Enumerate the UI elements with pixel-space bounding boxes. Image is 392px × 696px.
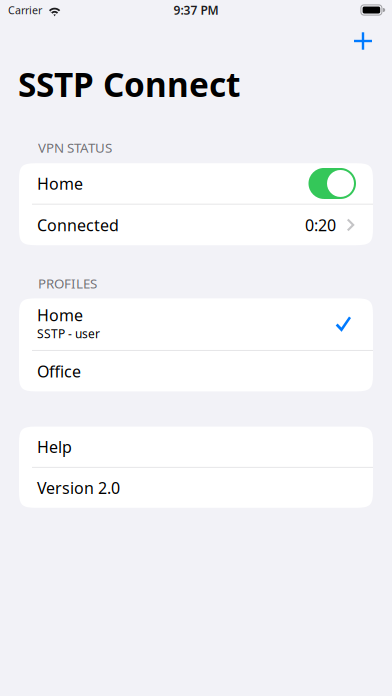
staticText: PROFILES xyxy=(38,274,97,292)
staticText: VPN STATUS xyxy=(38,139,112,156)
button[interactable]: Office xyxy=(19,351,373,391)
staticText: Version 2.0 xyxy=(37,477,120,498)
staticText: 9:37 PM xyxy=(173,2,218,18)
button[interactable]: Connected xyxy=(19,205,373,245)
button[interactable]: Add profile xyxy=(341,20,385,62)
staticText: Carrier xyxy=(8,3,42,17)
staticText: SSTP Connect xyxy=(18,62,240,106)
button[interactable]: Help xyxy=(19,427,373,467)
staticText: Home xyxy=(37,304,83,325)
staticText: SSTP - user xyxy=(37,326,100,341)
staticText: Help xyxy=(37,436,72,457)
staticText: Home xyxy=(37,173,83,194)
staticText: Connected xyxy=(37,214,119,235)
staticText: 0:20 xyxy=(305,214,336,235)
staticText: Office xyxy=(37,361,81,382)
button[interactable]: Home xyxy=(19,298,373,350)
